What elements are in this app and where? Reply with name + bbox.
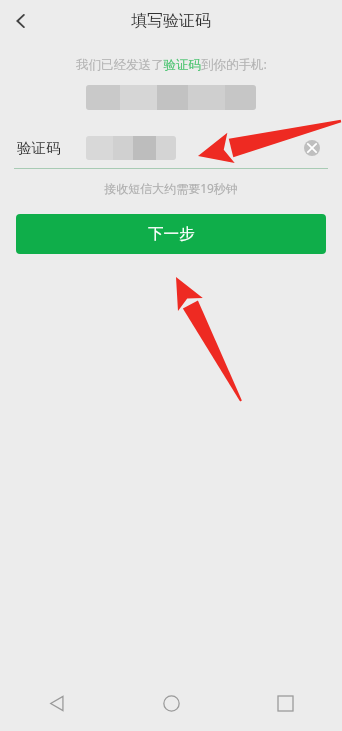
- button[interactable]: Back: [0, 0, 42, 42]
- staticText: 验证码: [17, 139, 61, 157]
- button[interactable]: Clear: [292, 128, 332, 168]
- staticText: 接收短信大约需要19秒钟: [104, 180, 238, 196]
- staticText: 填写验证码: [131, 11, 211, 31]
- button[interactable]: Back: [0, 675, 114, 731]
- button[interactable]: Recents: [228, 675, 342, 731]
- button[interactable]: Home: [114, 675, 228, 731]
- staticText: 下一步: [148, 224, 195, 244]
- button[interactable]: [86, 128, 292, 168]
- staticText: 我们已经发送了验证码到你的手机:: [76, 56, 267, 73]
- button[interactable]: 下一步: [16, 214, 326, 254]
